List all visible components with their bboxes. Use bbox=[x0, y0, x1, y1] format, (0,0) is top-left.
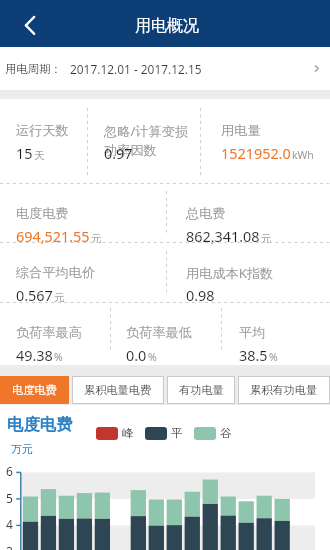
button[interactable]: Back bbox=[0, 0, 50, 47]
staticText: 平 bbox=[171, 426, 183, 440]
staticText: 38.5 bbox=[239, 346, 268, 366]
staticText: kWh bbox=[292, 148, 314, 162]
staticText: 负荷率最低 bbox=[126, 324, 192, 341]
staticText: 元 bbox=[54, 291, 65, 304]
button[interactable]: 用电周期： bbox=[0, 47, 330, 90]
staticText: 0.97 bbox=[104, 144, 133, 164]
staticText: 电度电费 bbox=[16, 205, 69, 222]
staticText: 0.98 bbox=[186, 286, 215, 306]
staticText: 49.38 bbox=[16, 346, 53, 366]
button[interactable]: 有功电量 bbox=[167, 376, 235, 404]
staticText: 电度电费 bbox=[7, 414, 73, 435]
staticText: 综合平均电价 bbox=[16, 264, 96, 281]
button[interactable]: 累积有功电量 bbox=[238, 376, 330, 404]
staticText: 有功电量 bbox=[179, 383, 224, 397]
staticText: 2017.12.01 - 2017.12.15 bbox=[70, 61, 202, 77]
staticText: 6 bbox=[6, 463, 13, 479]
button[interactable]: 电度电费 bbox=[0, 376, 69, 404]
staticText: 平均 bbox=[239, 324, 266, 341]
staticText: 天 bbox=[34, 149, 45, 162]
staticText: 0.567 bbox=[16, 286, 53, 306]
staticText: 运行天数 bbox=[16, 122, 69, 139]
staticText: 用电周期： bbox=[5, 62, 62, 76]
staticText: 电度电费 bbox=[12, 383, 57, 397]
staticText: 总电费 bbox=[186, 205, 226, 222]
staticText: % bbox=[54, 350, 63, 364]
staticText: 负荷率最高 bbox=[16, 324, 82, 341]
staticText: 万元 bbox=[11, 443, 33, 457]
staticText: 元 bbox=[261, 232, 272, 245]
staticText: 峰 bbox=[122, 426, 134, 440]
staticText: 15 bbox=[16, 144, 33, 164]
staticText: 累积有功电量 bbox=[250, 383, 318, 397]
staticText: 累积电量电费 bbox=[84, 383, 152, 397]
staticText: 862,341.08 bbox=[186, 227, 260, 247]
staticText: 4 bbox=[6, 516, 13, 532]
staticText: 功率因数 bbox=[104, 142, 157, 159]
staticText: 忽略/计算变损 bbox=[104, 122, 189, 140]
button[interactable]: 累积电量电费 bbox=[72, 376, 164, 404]
staticText: 1521952.0 bbox=[221, 144, 291, 164]
staticText: 用电量 bbox=[221, 122, 261, 139]
staticText: 694,521.55 bbox=[16, 227, 90, 247]
staticText: % bbox=[148, 350, 157, 364]
staticText: 谷 bbox=[220, 426, 232, 440]
staticText: 元 bbox=[91, 232, 102, 245]
staticText: 用电概况 bbox=[135, 16, 199, 36]
staticText: 5 bbox=[6, 490, 13, 506]
staticText: 0.0 bbox=[126, 346, 147, 366]
staticText: 3 bbox=[6, 543, 13, 550]
staticText: 用电成本K指数 bbox=[186, 264, 274, 282]
staticText: % bbox=[269, 350, 278, 364]
